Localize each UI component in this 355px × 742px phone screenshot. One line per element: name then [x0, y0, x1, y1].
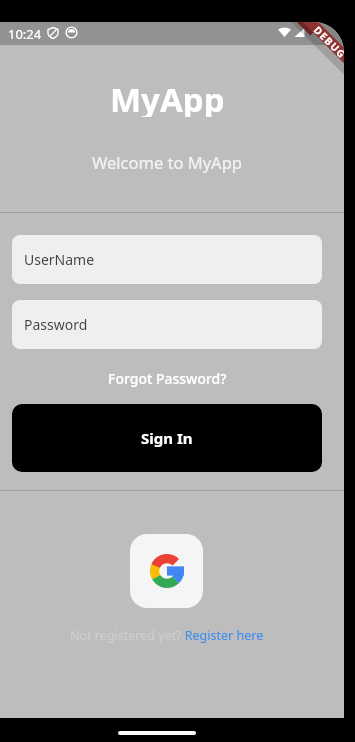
button[interactable]: Not registered yet? Register here	[0, 624, 334, 646]
button[interactable]: UserName	[12, 235, 322, 284]
staticText: Welcome to MyApp	[92, 151, 242, 173]
staticText: 10:24	[8, 25, 42, 43]
button[interactable]: Sign In	[12, 404, 322, 472]
staticText: Sign In	[141, 428, 193, 448]
staticText: Password	[24, 315, 88, 334]
staticText: UserName	[24, 250, 95, 269]
staticText: MyApp	[110, 77, 225, 117]
staticText: Not registered yet? Register here	[70, 627, 264, 644]
button[interactable]: Password	[12, 300, 322, 349]
button[interactable]	[130, 534, 203, 608]
staticText: DEBUG	[311, 23, 344, 62]
staticText: Forgot Password?	[108, 369, 227, 388]
button[interactable]: Forgot Password?	[0, 366, 334, 390]
